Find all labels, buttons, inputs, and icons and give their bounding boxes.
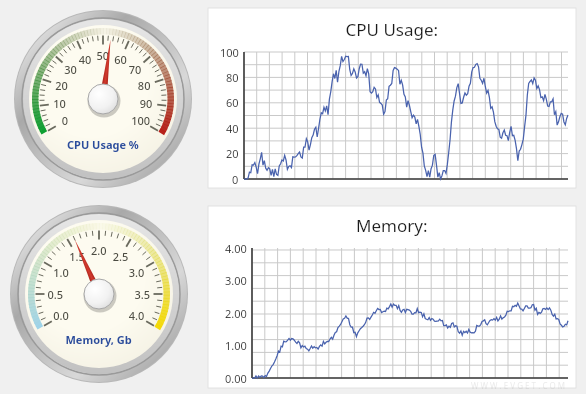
button[interactable]: Memory gauge (10, 205, 188, 383)
button[interactable]: CPU usage gauge (14, 10, 192, 188)
button[interactable] (208, 206, 576, 388)
button[interactable] (208, 8, 576, 188)
